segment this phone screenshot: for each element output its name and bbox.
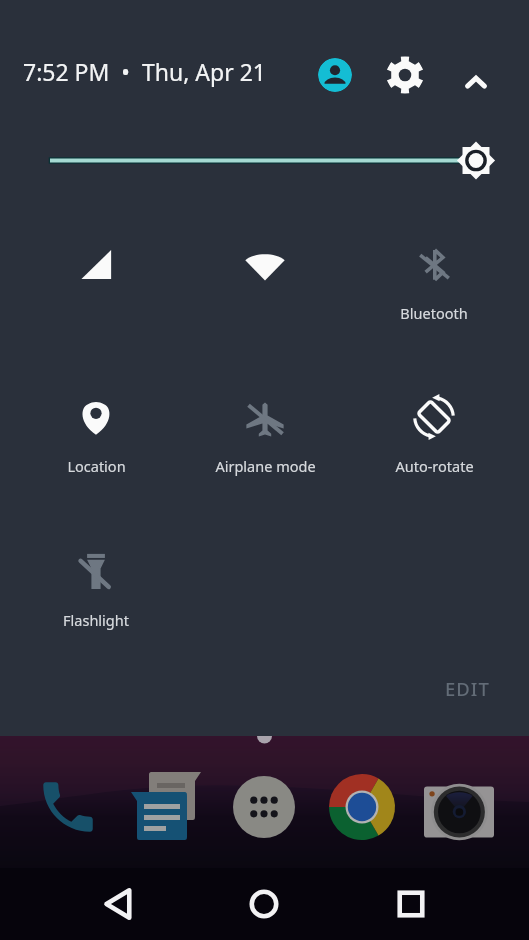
- button[interactable]: Recents: [387, 880, 435, 928]
- button[interactable]: Quick setting: [407, 238, 461, 292]
- button[interactable]: Camera: [424, 777, 494, 847]
- button[interactable]: Settings: [386, 56, 424, 94]
- staticText: Auto-rotate: [395, 456, 474, 476]
- button[interactable]: EDIT: [430, 667, 504, 709]
- staticText: EDIT: [445, 676, 490, 701]
- staticText: Flashlight: [63, 610, 129, 630]
- button[interactable]: Quick setting: [69, 545, 123, 599]
- button[interactable]: Back: [94, 880, 142, 928]
- button[interactable]: Apps: [233, 776, 295, 838]
- staticText: Bluetooth: [400, 303, 468, 323]
- button[interactable]: Messages: [129, 766, 199, 836]
- staticText: 7:52 PM • Thu, Apr 21: [23, 56, 266, 87]
- button[interactable]: Quick setting: [69, 392, 123, 446]
- button[interactable]: Quick setting: [407, 390, 461, 444]
- button[interactable]: Quick setting: [238, 392, 292, 446]
- staticText: Airplane mode: [215, 456, 316, 476]
- button[interactable]: Phone: [35, 774, 101, 840]
- button[interactable]: Brightness: [40, 138, 529, 184]
- button[interactable]: User: [318, 58, 352, 92]
- button[interactable]: 7:52 PM • Thu, Apr 21: [23, 56, 266, 87]
- button[interactable]: Home: [240, 880, 288, 928]
- button[interactable]: Quick setting: [238, 238, 292, 292]
- button[interactable]: Collapse: [458, 64, 494, 100]
- staticText: Location: [67, 456, 126, 476]
- button[interactable]: Chrome: [329, 774, 395, 840]
- button[interactable]: Quick setting: [69, 238, 123, 292]
